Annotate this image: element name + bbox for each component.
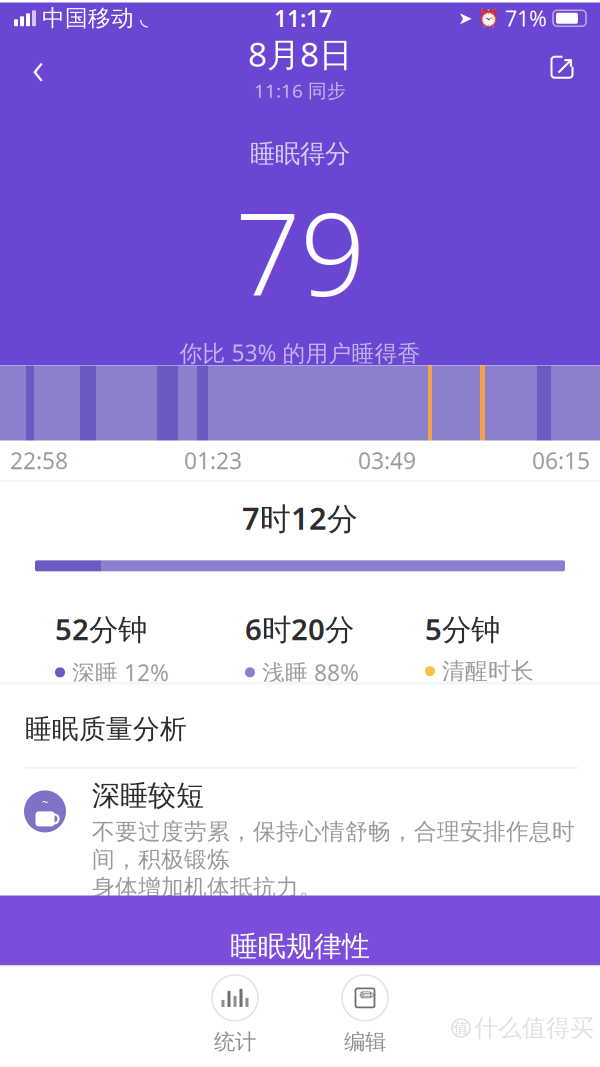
button[interactable]: 分享	[534, 39, 590, 95]
staticText: 深睡较短	[92, 778, 204, 813]
staticText: 睡眠得分	[250, 138, 350, 169]
button[interactable]: 返回	[10, 39, 66, 95]
staticText: 睡眠规律性	[230, 929, 370, 963]
staticText: 你比 53% 的用户睡得香	[179, 338, 420, 368]
staticText: 什么值得买	[474, 1013, 594, 1043]
staticText: ✏︎	[359, 984, 376, 1007]
staticText: 8月8日	[248, 32, 352, 76]
staticText: ⏰	[478, 8, 500, 28]
staticText: 79	[235, 175, 365, 328]
staticText: ↗	[554, 51, 575, 80]
staticText: 深睡 12%	[72, 657, 169, 687]
staticText: 编辑	[344, 1029, 386, 1055]
staticText: 不要过度劳累，保持心情舒畅，合理安排作息时间，积极锻炼 身体增加机体抵抗力。	[92, 818, 575, 901]
staticText: 统计	[214, 1029, 256, 1055]
button[interactable]: ✏︎	[310, 974, 420, 1056]
staticText: ~	[41, 794, 48, 810]
staticText: 6时20分	[245, 609, 354, 648]
staticText: 52分钟	[55, 609, 147, 648]
button[interactable]: 统计	[180, 974, 290, 1056]
staticText: 01:23	[184, 445, 242, 475]
staticText: 71%	[505, 4, 547, 32]
staticText: 睡眠质量分析	[25, 713, 187, 745]
staticText: 11:16 同步	[254, 78, 346, 103]
staticText: 7时12分	[242, 498, 358, 538]
staticText: 清醒时长	[442, 657, 534, 685]
staticText: 中国移动	[42, 4, 134, 32]
staticText: 5分钟	[425, 609, 500, 648]
staticText: 值	[453, 1019, 468, 1037]
staticText: ◟	[140, 7, 148, 30]
staticText: 11:17	[274, 3, 332, 33]
staticText: 浅睡 88%	[262, 657, 359, 687]
staticText: ➤	[458, 8, 473, 28]
staticText: 06:15	[532, 445, 590, 475]
staticText: ‹	[32, 37, 44, 97]
staticText: 03:49	[358, 445, 416, 475]
staticText: 22:58	[10, 445, 68, 475]
